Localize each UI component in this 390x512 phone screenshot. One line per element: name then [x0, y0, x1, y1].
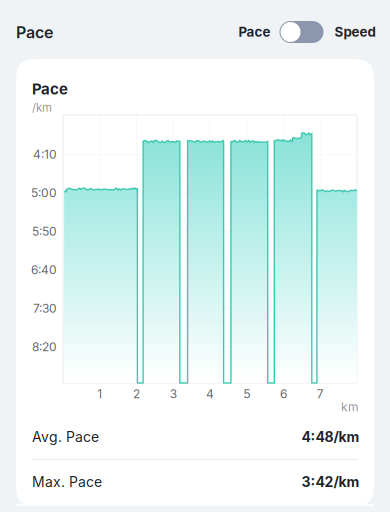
staticText: 7:30 — [33, 301, 57, 316]
staticText: 8:20 — [32, 340, 57, 354]
button[interactable]: Max. Pace — [16, 460, 374, 504]
staticText: 3:42/km — [301, 473, 359, 490]
staticText: 4:10 — [33, 147, 57, 162]
staticText: Pace — [16, 23, 53, 42]
staticText: Pace — [238, 24, 270, 40]
staticText: 5:50 — [32, 224, 57, 239]
button[interactable]: Switch between pace and speed — [270, 21, 334, 43]
staticText: /km — [32, 101, 52, 114]
staticText: 4 — [206, 387, 214, 401]
staticText: 6 — [280, 387, 287, 401]
staticText: 7 — [317, 387, 324, 401]
button[interactable]: Avg. Pace — [16, 415, 374, 459]
staticText: 4:48/km — [301, 428, 359, 445]
staticText: 5 — [243, 387, 250, 401]
staticText: 1 — [97, 387, 102, 401]
staticText: 3 — [170, 387, 177, 401]
staticText: Avg. Pace — [32, 428, 99, 445]
staticText: Max. Pace — [32, 473, 102, 490]
staticText: 6:40 — [31, 263, 57, 277]
staticText: 2 — [133, 387, 140, 401]
staticText: Speed — [334, 24, 375, 40]
staticText: Pace — [32, 80, 68, 98]
staticText: 5:00 — [31, 186, 57, 200]
staticText: km — [341, 400, 359, 414]
